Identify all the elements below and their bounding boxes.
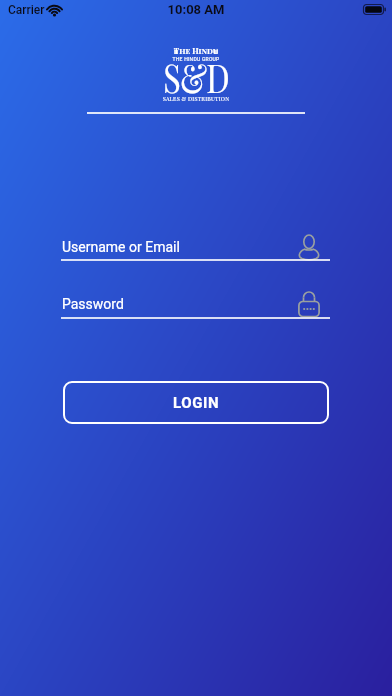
staticText: Username or Email <box>62 239 180 255</box>
button[interactable]: LOGIN <box>63 381 329 424</box>
staticText: LOGIN <box>173 394 220 412</box>
staticText: 10:08 AM <box>0 2 392 17</box>
staticText: SALES & DISTRIBUTION <box>14 95 378 103</box>
staticText: Carrier <box>8 3 45 17</box>
button[interactable]: Password <box>61 291 330 319</box>
staticText: Password <box>62 296 124 312</box>
staticText: THE HINDU GROUP <box>0 56 392 62</box>
staticText: The Hindu <box>0 45 392 56</box>
staticText: S&D <box>33 51 359 103</box>
button[interactable]: Username or Email <box>61 234 330 262</box>
